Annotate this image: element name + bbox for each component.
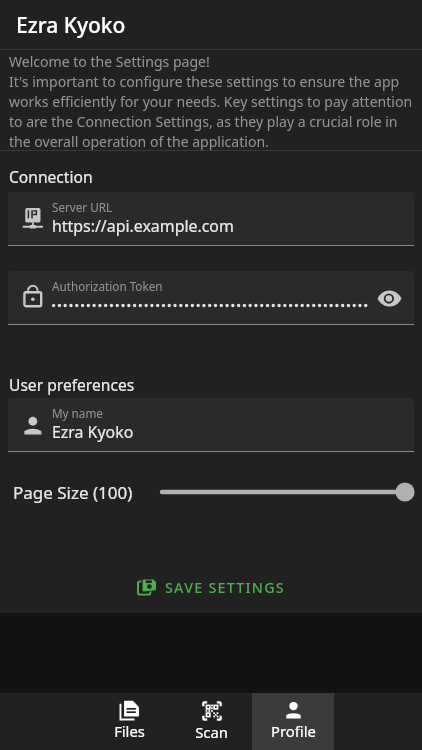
button[interactable]: Page size slider <box>152 472 414 512</box>
staticText: https://api.example.com <box>52 215 234 237</box>
button[interactable]: My name <box>8 398 414 451</box>
staticText: SAVE SETTINGS <box>165 578 285 597</box>
staticText: Server URL <box>52 199 113 215</box>
button[interactable]: Scan <box>170 693 252 750</box>
staticText: Profile <box>271 721 316 741</box>
staticText: User preferences <box>9 374 135 395</box>
button[interactable]: SAVE SETTINGS <box>127 571 295 603</box>
button[interactable]: Profile <box>252 693 334 750</box>
staticText: Authorization Token <box>52 278 163 294</box>
button[interactable]: Authorization Token <box>8 271 414 324</box>
staticText: Welcome to the Settings page! It's impor… <box>9 52 413 151</box>
staticText: Files <box>114 721 145 741</box>
staticText: My name <box>52 405 103 421</box>
staticText: Ezra Kyoko <box>52 421 134 443</box>
staticText: Connection <box>9 166 93 187</box>
staticText: Ezra Kyoko <box>16 11 126 40</box>
staticText: Page Size (100) <box>13 481 133 504</box>
button[interactable]: Show token <box>372 281 406 315</box>
staticText: Scan <box>195 722 228 742</box>
button[interactable]: Server URL <box>8 192 414 245</box>
button[interactable]: Files <box>88 693 170 750</box>
